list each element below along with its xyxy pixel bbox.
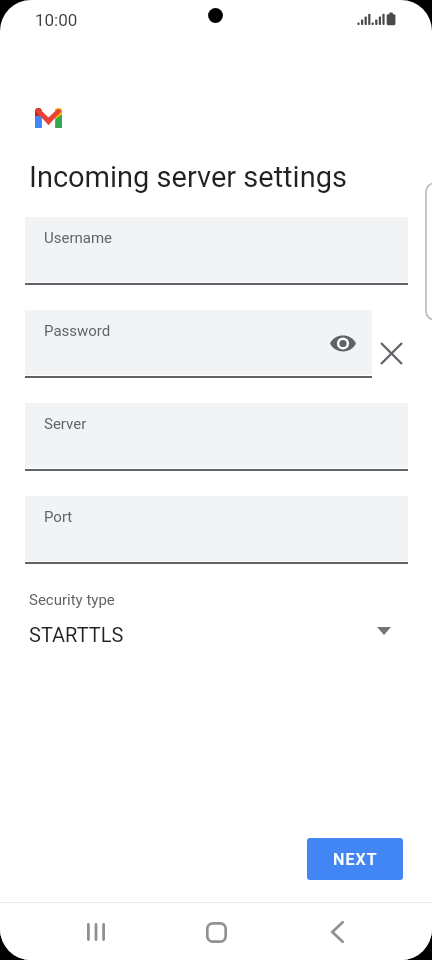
button[interactable]: Back — [313, 908, 361, 956]
button[interactable]: Recent apps — [72, 908, 120, 956]
button[interactable]: Clear password — [376, 338, 406, 368]
staticText: STARTTLS — [29, 623, 124, 646]
staticText: Password — [44, 322, 111, 340]
staticText: Username — [44, 229, 113, 247]
button[interactable]: Home — [192, 908, 240, 956]
button[interactable]: Username — [25, 217, 408, 284]
button[interactable]: Server — [25, 403, 408, 470]
button[interactable]: Show password — [329, 329, 357, 357]
staticText: Port — [44, 508, 73, 526]
button[interactable]: Security type — [0, 585, 432, 655]
staticText: 10:00 — [35, 10, 78, 30]
button[interactable]: NEXT — [307, 838, 403, 880]
button[interactable]: Password — [25, 310, 372, 377]
button[interactable]: Port — [25, 496, 408, 563]
staticText: Server — [44, 415, 87, 433]
staticText: NEXT — [333, 850, 378, 869]
staticText: Incoming server settings — [29, 160, 347, 194]
staticText: Security type — [29, 591, 115, 609]
